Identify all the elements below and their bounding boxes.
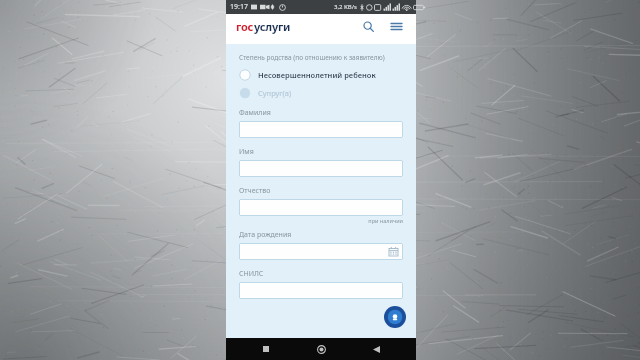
button[interactable]: Menu: [386, 16, 406, 36]
button[interactable]: Супруг(а): [239, 87, 403, 99]
button[interactable]: Несовершеннолетний ребенок: [239, 69, 403, 81]
staticText: Несовершеннолетний ребенок: [258, 70, 376, 80]
staticText: Фамилия: [239, 108, 271, 118]
button[interactable]: гос: [236, 19, 291, 34]
staticText: услуги: [254, 19, 291, 34]
button[interactable]: [239, 121, 403, 138]
staticText: Отчество: [239, 186, 271, 196]
staticText: Имя: [239, 147, 254, 157]
button[interactable]: [239, 282, 403, 299]
staticText: Супруг(а): [258, 88, 292, 98]
staticText: 3,2 KB/s: [334, 3, 358, 11]
button[interactable]: [239, 199, 403, 216]
staticText: 19:17: [230, 2, 248, 12]
button[interactable]: Search: [358, 16, 378, 36]
button[interactable]: Assistant: [384, 306, 406, 328]
staticText: Дата рождения: [239, 230, 292, 240]
button[interactable]: Home: [306, 338, 336, 360]
staticText: СНИЛС: [239, 269, 264, 279]
button[interactable]: [239, 243, 403, 260]
staticText: гос: [236, 19, 254, 34]
button[interactable]: Recents: [251, 338, 281, 360]
button[interactable]: [239, 160, 403, 177]
staticText: при наличии: [239, 217, 403, 224]
button[interactable]: Back: [361, 338, 391, 360]
staticText: Степень родства (по отношению к заявител…: [239, 53, 385, 62]
